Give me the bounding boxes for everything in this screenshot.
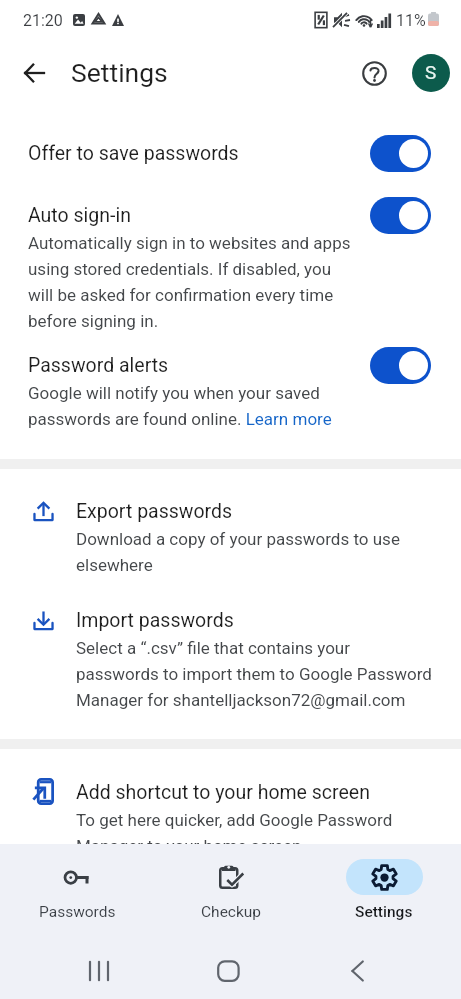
staticText: Import passwords (76, 609, 234, 632)
button[interactable]: Toggle (370, 197, 431, 234)
staticText: 21:20 (23, 11, 63, 30)
button[interactable]: Home (193, 932, 263, 999)
staticText: Select a “.csv” file that contains your … (76, 634, 434, 712)
button[interactable]: Add shortcut to your home screen (0, 781, 461, 844)
button[interactable]: Auto sign-in (0, 204, 461, 348)
button[interactable]: Back (10, 49, 58, 97)
staticText: 11% (396, 11, 426, 30)
button[interactable]: Settings (307, 844, 461, 932)
staticText: Password alerts (28, 354, 169, 377)
staticText: To get here quicker, add Google Password… (76, 806, 434, 844)
staticText: Settings (71, 57, 168, 88)
button[interactable]: Toggle (370, 135, 431, 172)
button[interactable]: Checkup (154, 844, 308, 932)
button[interactable]: Account (412, 54, 450, 92)
staticText: Export passwords (76, 500, 233, 523)
staticText: Download a copy of your passwords to use… (76, 525, 434, 577)
staticText: Passwords (39, 903, 116, 921)
staticText: Offer to save passwords (28, 142, 239, 165)
staticText: Automatically sign in to websites and ap… (28, 229, 355, 333)
staticText: S (425, 61, 437, 83)
button[interactable]: Import passwords (0, 609, 461, 731)
staticText: Checkup (201, 903, 262, 921)
button[interactable]: Offer to save passwords (0, 142, 461, 198)
staticText: Settings (355, 903, 413, 921)
button[interactable]: Password alerts (0, 354, 461, 450)
button[interactable]: Recent apps (64, 932, 134, 999)
button[interactable]: Toggle (370, 347, 431, 384)
staticText: Google will notify you when your saved p… (28, 379, 355, 431)
button[interactable]: Help (350, 49, 398, 97)
staticText: Auto sign-in (28, 204, 131, 227)
button[interactable]: Back (322, 932, 392, 999)
staticText: Add shortcut to your home screen (76, 781, 370, 804)
button[interactable]: Passwords (0, 844, 154, 932)
button[interactable]: Export passwords (0, 500, 461, 600)
